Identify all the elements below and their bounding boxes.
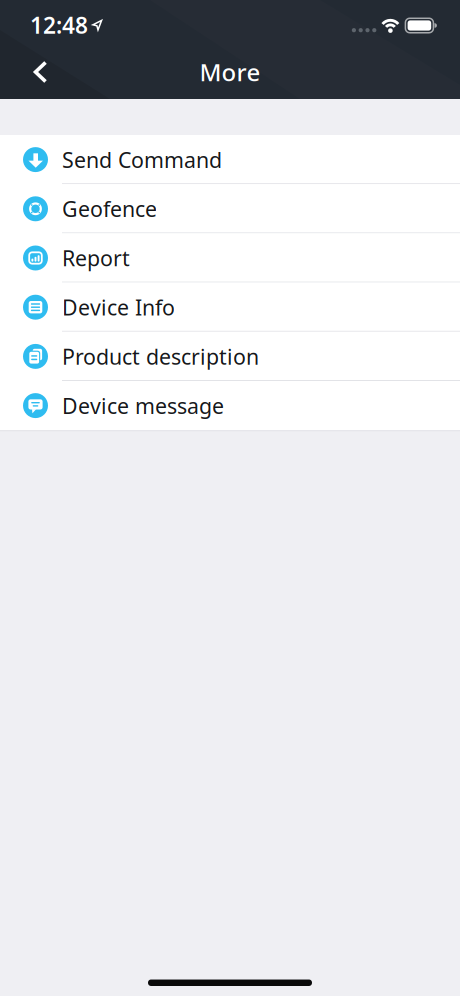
staticText: Geofence: [62, 195, 157, 223]
button[interactable]: Device Info: [0, 283, 460, 332]
staticText: Send Command: [62, 145, 222, 174]
button[interactable]: Send Command: [0, 135, 460, 184]
staticText: Device Info: [62, 293, 175, 321]
button[interactable]: Back: [0, 60, 68, 83]
staticText: More: [199, 56, 260, 88]
button[interactable]: Product description: [0, 332, 460, 381]
button[interactable]: Device message: [0, 381, 460, 430]
staticText: Report: [62, 244, 130, 272]
button[interactable]: Report: [0, 233, 460, 283]
staticText: Device message: [62, 391, 224, 420]
staticText: 12:48: [30, 10, 88, 40]
button[interactable]: Geofence: [0, 184, 460, 233]
staticText: Product description: [62, 342, 259, 370]
